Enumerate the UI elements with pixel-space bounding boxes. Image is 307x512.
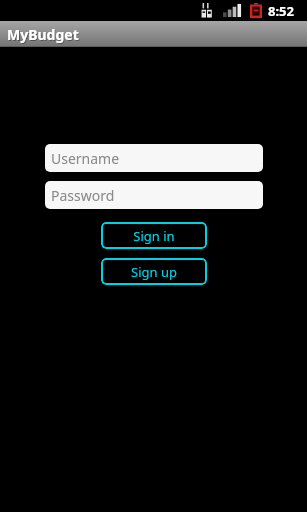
button[interactable]: Username <box>45 144 263 172</box>
staticText: MyBudget <box>7 25 79 44</box>
button[interactable]: Sign in <box>101 222 207 249</box>
staticText: MyBudget <box>8 26 80 45</box>
button[interactable]: Sign up <box>101 258 207 285</box>
button[interactable]: Password <box>45 181 263 209</box>
staticText: Username <box>51 149 120 168</box>
staticText: Sign in <box>133 227 175 245</box>
staticText: Password <box>51 186 115 205</box>
staticText: 8:52 <box>268 2 294 20</box>
staticText: Sign up <box>131 263 177 281</box>
